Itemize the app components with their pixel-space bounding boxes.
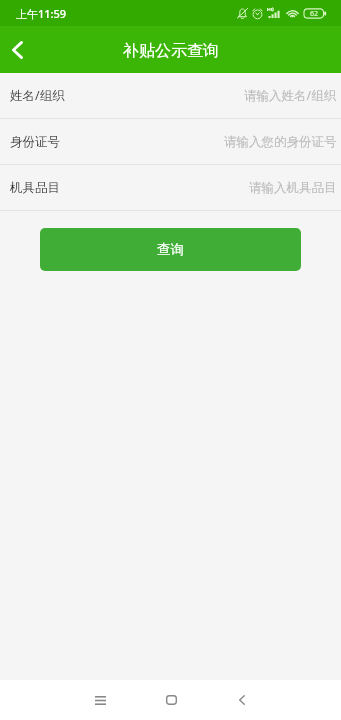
button[interactable]: Recent apps <box>76 680 124 720</box>
staticText: 机具品目 <box>10 180 60 196</box>
staticText: 请输入您的身份证号 <box>224 134 337 150</box>
button[interactable]: Home <box>147 680 195 720</box>
staticText: 姓名/组织 <box>10 87 65 104</box>
staticText: 查询 <box>157 241 184 258</box>
button[interactable]: 查询 <box>40 228 301 271</box>
button[interactable]: 机具品目 <box>0 165 341 210</box>
staticText: 补贴公示查询 <box>123 41 219 61</box>
staticText: 上午11:59 <box>16 6 67 21</box>
staticText: 身份证号 <box>10 134 60 150</box>
staticText: 请输入姓名/组织 <box>244 87 337 104</box>
button[interactable]: Back <box>218 680 266 720</box>
button[interactable]: 返回 <box>0 26 34 73</box>
staticText: 62 <box>310 9 319 19</box>
button[interactable]: 身份证号 <box>0 119 341 164</box>
button[interactable]: 姓名/组织 <box>0 73 341 118</box>
staticText: 请输入机具品目 <box>249 180 337 196</box>
